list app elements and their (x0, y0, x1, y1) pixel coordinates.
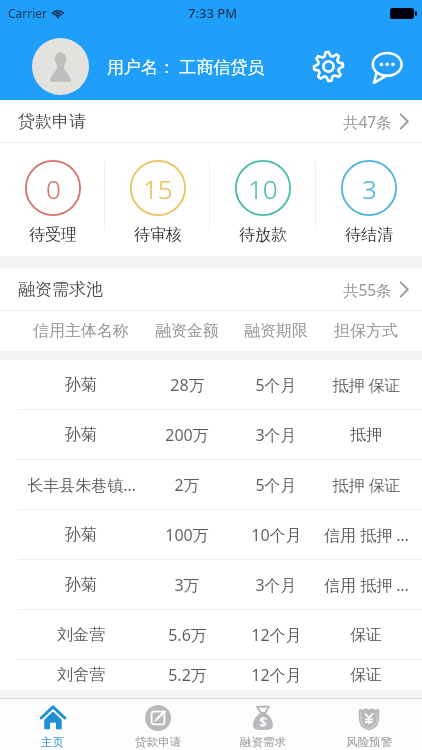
button[interactable]: Messages (366, 46, 406, 86)
staticText: 待受理 (29, 225, 77, 245)
staticText: 抵押 (350, 425, 382, 445)
staticText: 7:33 PM (188, 4, 238, 22)
button[interactable]: 风险预警 (316, 699, 422, 750)
staticText: 刘金营 (57, 625, 105, 645)
staticText: 风险预警 (346, 735, 392, 749)
staticText: 保证 (350, 625, 382, 645)
button[interactable]: 贷款申请 (105, 699, 210, 750)
staticText: 待放款 (239, 225, 287, 245)
staticText: 抵押 保证 (332, 474, 401, 496)
staticText: 5.6万 (168, 624, 207, 646)
staticText: 保证 (350, 665, 382, 685)
staticText: 100万 (165, 524, 209, 546)
staticText: 3万 (174, 574, 200, 596)
staticText: 2万 (174, 474, 200, 496)
staticText: Carrier (8, 5, 48, 21)
staticText: 待审核 (134, 225, 182, 245)
button[interactable]: 孙菊 (0, 410, 422, 459)
button[interactable]: 长丰县朱巷镇… (0, 460, 422, 509)
staticText: 主页 (41, 735, 64, 749)
staticText: 3个月 (255, 424, 297, 446)
staticText: 10个月 (251, 524, 302, 546)
button[interactable]: 10 (210, 143, 316, 256)
staticText: 长丰县朱巷镇… (27, 474, 136, 496)
button[interactable]: 孙菊 (0, 560, 422, 609)
button[interactable]: 刘金营 (0, 610, 422, 659)
staticText: 12个月 (251, 624, 302, 646)
staticText: 信用 抵押 … (324, 574, 409, 596)
button[interactable]: 3 (316, 143, 422, 256)
staticText: 28万 (170, 374, 205, 396)
staticText: 孙菊 (65, 575, 97, 595)
staticText: 共47条 (343, 111, 392, 132)
staticText: 贷款申请 (135, 735, 181, 749)
button[interactable]: 主页 (0, 699, 105, 750)
staticText: 孙菊 (65, 425, 97, 445)
button[interactable]: 融资需求池 (0, 268, 422, 310)
staticText: 刘舍营 (57, 665, 105, 685)
staticText: 融资需求池 (18, 279, 103, 300)
staticText: 融资金额 (155, 321, 219, 341)
staticText: 15 (143, 171, 173, 206)
staticText: 待结清 (345, 225, 393, 245)
staticText: 信用 抵押 … (324, 524, 409, 546)
button[interactable]: 刘舍营 (0, 660, 422, 690)
staticText: 孙菊 (65, 375, 97, 395)
staticText: 12个月 (251, 664, 302, 686)
button[interactable]: 孙菊 (0, 360, 422, 409)
staticText: 抵押 保证 (332, 374, 401, 396)
button[interactable]: 孙菊 (0, 510, 422, 559)
staticText: 0 (46, 171, 61, 206)
staticText: 信用主体名称 (33, 321, 129, 341)
button[interactable]: 0 (0, 143, 105, 256)
button[interactable]: Settings (308, 46, 348, 86)
button[interactable]: Profile avatar (32, 38, 89, 95)
staticText: 200万 (165, 424, 209, 446)
staticText: 共55条 (343, 279, 392, 300)
staticText: 3个月 (255, 574, 297, 596)
staticText: 贷款申请 (18, 111, 86, 132)
staticText: 3 (362, 171, 377, 206)
staticText: 5个月 (255, 474, 297, 496)
button[interactable]: 15 (105, 143, 210, 256)
staticText: 5个月 (255, 374, 297, 396)
button[interactable]: 贷款申请 (0, 100, 422, 142)
staticText: 融资需求 (240, 735, 286, 749)
staticText: 融资期限 (244, 321, 308, 341)
staticText: 担保方式 (334, 321, 398, 341)
staticText: 孙菊 (65, 525, 97, 545)
staticText: 5.2万 (168, 664, 207, 686)
staticText: 10 (248, 171, 278, 206)
staticText: 用户名： 工商信贷员 (107, 55, 265, 78)
button[interactable]: 融资需求 (210, 699, 316, 750)
